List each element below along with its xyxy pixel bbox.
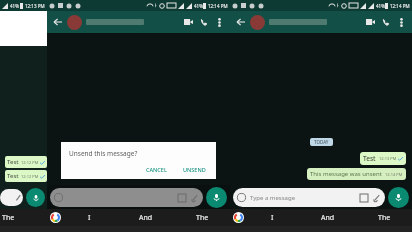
staticText: This message was unsent (310, 170, 382, 178)
button[interactable]: Back (51, 15, 65, 29)
staticText: 12:14 PM (208, 3, 228, 9)
button[interactable]: And (118, 213, 174, 223)
button[interactable]: This message was unsent (310, 170, 403, 178)
button[interactable]: Voice message (26, 188, 45, 207)
button[interactable]: Google (50, 212, 61, 223)
button[interactable]: Voice message (388, 187, 409, 208)
staticText: 12:13 PM (25, 3, 45, 9)
button[interactable]: I (61, 213, 118, 223)
staticText: 12:14 PM (390, 3, 410, 9)
button[interactable]: CANCEL (143, 164, 170, 175)
staticText: And (321, 213, 335, 223)
button[interactable]: UNSEND (180, 164, 209, 175)
staticText: CANCEL (146, 166, 167, 173)
button[interactable] (269, 19, 362, 25)
button[interactable]: Google (233, 212, 244, 223)
staticText: 41% (376, 3, 385, 9)
staticText: Test (363, 154, 376, 163)
button[interactable]: Test (363, 154, 403, 163)
button[interactable]: Video call (362, 14, 378, 30)
staticText: 41% (194, 3, 203, 9)
staticText: The (2, 213, 15, 223)
staticText: Test (7, 172, 19, 180)
button[interactable] (86, 19, 180, 25)
staticText: The (378, 213, 391, 223)
staticText: The (196, 213, 209, 223)
staticText: And (139, 213, 153, 223)
staticText: I (88, 213, 91, 223)
button[interactable] (0, 189, 23, 206)
staticText: 12:12 PM (21, 160, 39, 165)
button[interactable]: More options (212, 15, 226, 29)
staticText: UNSEND (183, 166, 206, 173)
staticText: ⟊ (155, 3, 157, 8)
staticText: I (271, 213, 274, 223)
staticText: 12:13 PM (379, 156, 397, 161)
staticText: 12:14 PM (385, 172, 403, 177)
staticText: Unsend this message? (69, 149, 138, 158)
button[interactable]: Back (234, 15, 248, 29)
staticText: ⟊ (337, 3, 339, 8)
staticText: 12:12 PM (21, 174, 39, 179)
staticText: 41% (10, 3, 19, 9)
button[interactable]: More options (394, 15, 408, 29)
staticText: Type a message (250, 194, 296, 202)
button[interactable] (54, 188, 199, 207)
button[interactable]: Video call (180, 14, 196, 30)
staticText: Test (7, 158, 19, 166)
button[interactable]: Call (196, 14, 212, 30)
button[interactable]: I (244, 213, 300, 223)
button[interactable]: Type a message (237, 188, 381, 207)
button[interactable]: The (356, 213, 412, 223)
button[interactable]: And (300, 213, 356, 223)
staticText: TODAY (314, 139, 329, 145)
button[interactable]: Call (378, 14, 394, 30)
button[interactable]: The (174, 213, 230, 223)
button[interactable]: Voice message (206, 187, 227, 208)
